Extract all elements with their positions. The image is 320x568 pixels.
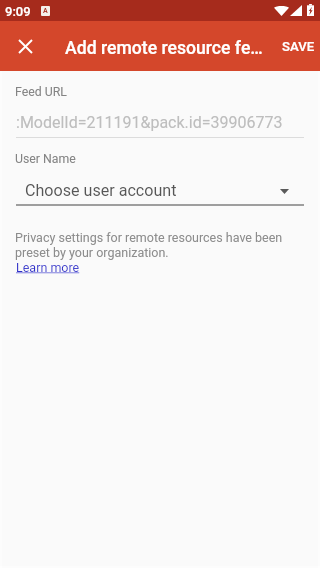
button[interactable]: Feed URL [15, 82, 304, 138]
staticText: Choose user account [25, 181, 177, 200]
staticText: Add remote resource fe… [65, 38, 263, 59]
button[interactable]: Close [9, 21, 41, 71]
button[interactable]: SAVE [276, 21, 320, 71]
staticText: 9:09 [5, 4, 31, 19]
staticText: SAVE [282, 39, 315, 54]
staticText: User Name [15, 152, 76, 166]
button[interactable]: Learn more [16, 260, 80, 275]
staticText: Feed URL [15, 85, 67, 99]
staticText: A [43, 7, 48, 15]
staticText: Learn more [16, 260, 80, 275]
staticText: :ModelId=211191&pack.id=39906773 [16, 113, 283, 132]
staticText: Privacy settings for remote resources ha… [15, 230, 283, 260]
button[interactable]: User Name [15, 149, 304, 206]
